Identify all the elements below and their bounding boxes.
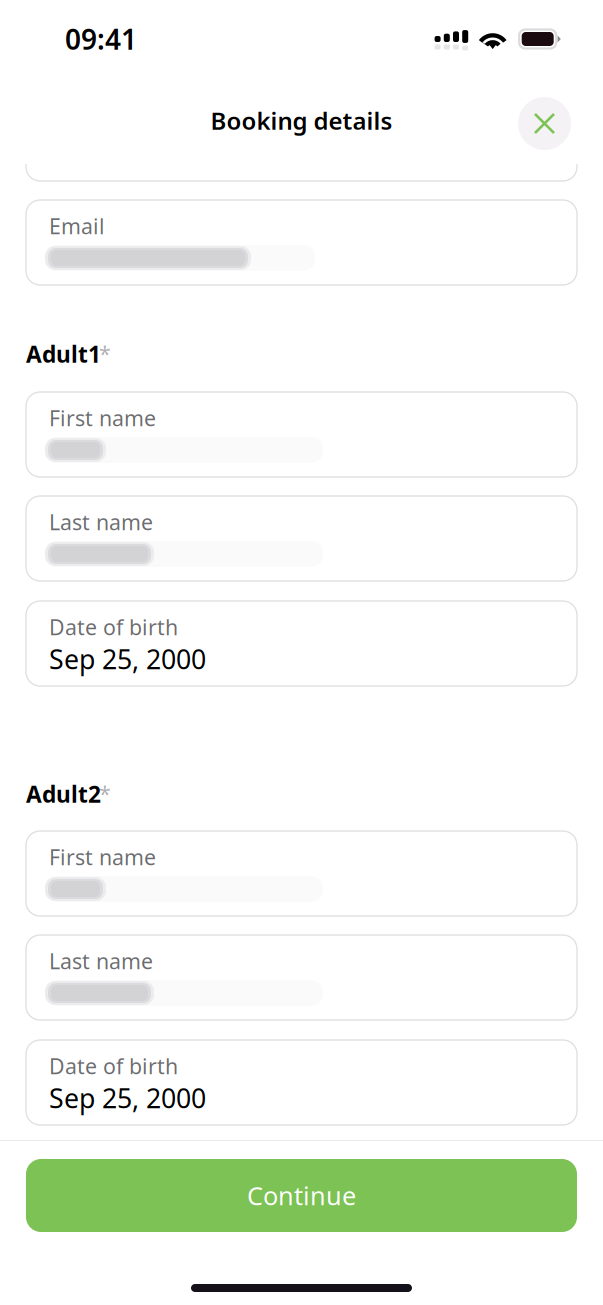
button[interactable]: First name: [26, 831, 577, 916]
button[interactable]: Continue: [26, 1159, 577, 1232]
staticText: *: [99, 339, 111, 367]
staticText: Date of birth: [49, 1052, 178, 1080]
staticText: Adult1: [26, 339, 101, 369]
staticText: First name: [49, 843, 156, 871]
button[interactable]: Email: [26, 200, 577, 285]
staticText: First name: [49, 404, 156, 432]
staticText: Date of birth: [49, 613, 178, 641]
button[interactable]: Close: [518, 97, 571, 150]
button[interactable]: Date of birth: [26, 1040, 577, 1125]
staticText: Sep 25, 2000: [49, 1080, 206, 1116]
staticText: Last name: [49, 508, 153, 536]
staticText: *: [99, 779, 111, 807]
button[interactable]: Last name: [26, 935, 577, 1020]
staticText: Last name: [49, 947, 153, 975]
button[interactable]: First name: [26, 392, 577, 477]
staticText: Sep 25, 2000: [49, 641, 206, 677]
button[interactable]: Date of birth: [26, 601, 577, 686]
staticText: Adult2: [26, 779, 101, 809]
staticText: 09:41: [65, 20, 137, 58]
staticText: Continue: [247, 1179, 356, 1212]
staticText: Booking details: [210, 105, 392, 136]
staticText: Email: [49, 212, 105, 240]
button[interactable]: Last name: [26, 496, 577, 581]
